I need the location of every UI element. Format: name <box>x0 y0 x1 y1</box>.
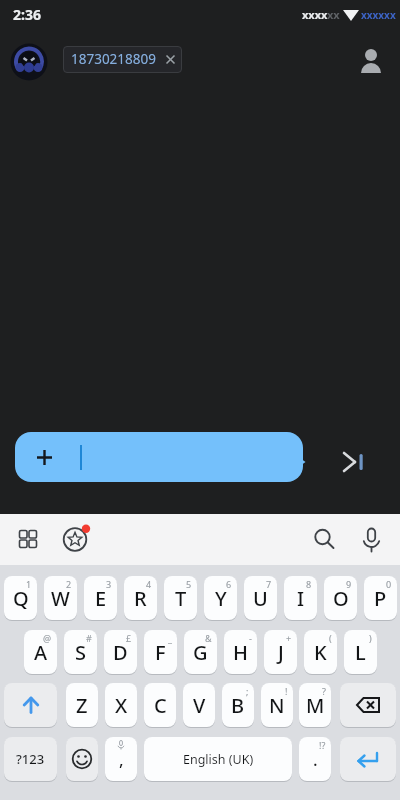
button[interactable] <box>15 432 303 482</box>
staticText: F <box>155 639 166 666</box>
button[interactable] <box>62 526 90 554</box>
staticText: T <box>175 585 187 612</box>
button[interactable]: J <box>264 630 297 674</box>
staticText: ! <box>285 685 288 697</box>
staticText: xxxx <box>302 7 328 22</box>
staticText: 9 <box>346 578 352 590</box>
button[interactable] <box>342 450 366 474</box>
staticText: ; <box>246 685 249 697</box>
button[interactable]: ?123 <box>4 737 57 781</box>
staticText: X <box>115 692 128 719</box>
staticText: Y <box>215 585 227 612</box>
staticText: 3 <box>106 578 112 590</box>
staticText: B <box>231 692 245 719</box>
button[interactable]: D <box>104 630 137 674</box>
staticText: . <box>313 748 318 771</box>
staticText: W <box>51 585 70 612</box>
button[interactable]: Z <box>66 683 98 727</box>
staticText: H <box>233 639 248 666</box>
button[interactable]: W <box>44 576 77 620</box>
staticText: 1 <box>26 578 32 590</box>
staticText: S <box>75 639 86 666</box>
staticText: O <box>333 585 349 612</box>
button[interactable]: O <box>324 576 357 620</box>
staticText: U <box>253 585 268 612</box>
staticText: 7 <box>266 578 272 590</box>
staticText: V <box>193 692 206 719</box>
staticText: xxxxxx <box>361 8 396 22</box>
button[interactable] <box>340 737 396 781</box>
button[interactable]: . <box>299 737 331 781</box>
button[interactable]: G <box>184 630 217 674</box>
button[interactable]: N <box>261 683 293 727</box>
staticText: E <box>95 585 107 612</box>
staticText: _ <box>168 632 172 644</box>
staticText: ) <box>369 632 372 644</box>
button[interactable]: , <box>105 737 137 781</box>
button[interactable]: X <box>105 683 137 727</box>
button[interactable]: H <box>224 630 257 674</box>
staticText: M <box>306 692 325 719</box>
button[interactable]: E <box>84 576 117 620</box>
button[interactable]: V <box>183 683 215 727</box>
staticText: 8 <box>306 578 312 590</box>
button[interactable]: P <box>364 576 397 620</box>
staticText: 2:36 <box>13 5 41 24</box>
staticText: L <box>355 639 366 666</box>
staticText: G <box>193 639 208 666</box>
button[interactable] <box>360 43 382 77</box>
staticText: R <box>134 585 147 612</box>
button[interactable]: C <box>144 683 176 727</box>
staticText: Z <box>76 692 88 719</box>
staticText: £ <box>126 632 132 644</box>
button[interactable]: I <box>284 576 317 620</box>
staticText: 6 <box>226 578 232 590</box>
staticText: + <box>286 632 292 644</box>
staticText: 18730218809 <box>71 50 156 68</box>
staticText: 5 <box>186 578 192 590</box>
button[interactable] <box>340 683 396 727</box>
button[interactable]: A <box>24 630 57 674</box>
button[interactable]: L <box>344 630 377 674</box>
button[interactable] <box>10 43 48 81</box>
staticText: - <box>249 632 252 644</box>
button[interactable]: R <box>124 576 157 620</box>
button[interactable]: U <box>244 576 277 620</box>
staticText: xx <box>327 7 340 22</box>
button[interactable] <box>313 528 337 552</box>
staticText: J <box>278 639 284 666</box>
staticText: !? <box>319 739 326 751</box>
button[interactable] <box>4 683 57 727</box>
staticText: ? <box>322 685 326 697</box>
staticText: # <box>86 632 92 644</box>
button[interactable]: 18730218809 <box>63 46 182 73</box>
button[interactable]: Y <box>204 576 237 620</box>
button[interactable]: English (UK) <box>144 737 292 781</box>
staticText: ( <box>329 632 332 644</box>
button[interactable]: Q <box>4 576 37 620</box>
button[interactable] <box>66 737 98 781</box>
staticText: 2 <box>66 578 72 590</box>
button[interactable]: F <box>144 630 177 674</box>
staticText: K <box>314 639 327 666</box>
button[interactable]: S <box>64 630 97 674</box>
button[interactable]: T <box>164 576 197 620</box>
staticText: , <box>119 748 124 771</box>
staticText: C <box>154 692 167 719</box>
staticText: ?123 <box>16 750 45 768</box>
staticText: @ <box>43 632 52 644</box>
staticText: & <box>205 632 212 644</box>
button[interactable]: B <box>222 683 254 727</box>
button[interactable] <box>361 527 382 554</box>
staticText: I <box>297 585 305 612</box>
staticText: Q <box>13 585 29 612</box>
staticText: 4 <box>146 578 152 590</box>
staticText: A <box>34 639 48 666</box>
staticText: 0 <box>386 578 392 590</box>
staticText: N <box>269 692 285 719</box>
button[interactable] <box>18 529 38 549</box>
staticText: P <box>374 585 387 612</box>
staticText: English (UK) <box>183 751 254 768</box>
button[interactable]: M <box>299 683 331 727</box>
button[interactable]: K <box>304 630 337 674</box>
